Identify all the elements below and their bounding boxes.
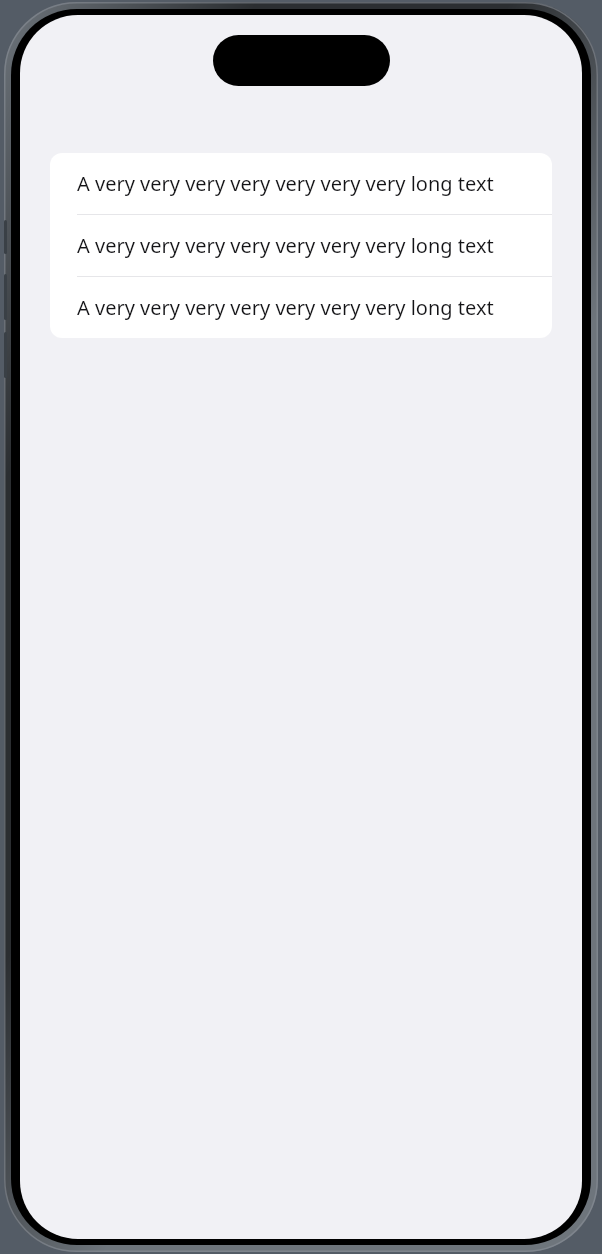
staticText: A very very very very very very very lon… [77,294,494,321]
button[interactable]: A very very very very very very very lon… [50,277,552,338]
staticText: A very very very very very very very lon… [77,232,494,259]
button[interactable]: A very very very very very very very lon… [50,153,552,214]
button[interactable]: A very very very very very very very lon… [50,215,552,276]
staticText: A very very very very very very very lon… [77,170,494,197]
